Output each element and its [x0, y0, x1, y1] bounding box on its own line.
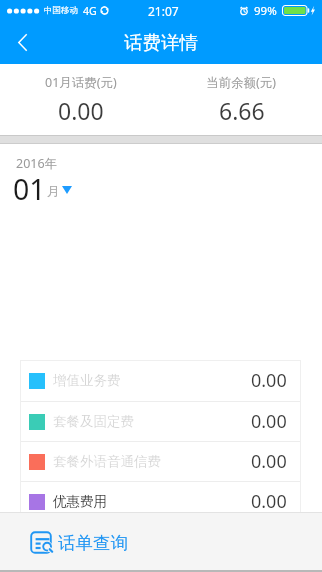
staticText: 6.66	[219, 95, 265, 126]
button[interactable]: 套餐外语音通信费	[20, 442, 301, 481]
staticText: 套餐及固定费	[53, 413, 134, 430]
staticText: 0.00	[58, 95, 104, 126]
staticText: 01	[13, 170, 46, 209]
staticText: 月	[47, 183, 60, 199]
staticText: 增值业务费	[53, 372, 121, 389]
staticText: 0.00	[251, 368, 287, 393]
staticText: 01月话费(元)	[45, 74, 117, 91]
staticText: 优惠费用	[53, 493, 107, 510]
button[interactable]: Back	[0, 21, 44, 64]
button[interactable]: 增值业务费	[20, 360, 301, 401]
staticText: 套餐外语音通信费	[53, 453, 161, 470]
staticText: 0.00	[251, 489, 287, 514]
staticText: 2016年	[16, 155, 58, 172]
button[interactable]: Select month	[58, 181, 76, 199]
staticText: 当前余额(元)	[206, 74, 277, 91]
staticText: 话费详情	[124, 31, 198, 54]
staticText: 中国移动	[44, 5, 78, 16]
staticText: 话单查询	[58, 532, 128, 554]
button[interactable]: 优惠费用	[20, 482, 301, 521]
staticText: 21:07	[148, 3, 179, 19]
staticText: 0.00	[251, 409, 287, 434]
button[interactable]: 话单查询	[30, 531, 128, 554]
staticText: 0.00	[251, 449, 287, 474]
staticText: 99%	[254, 3, 277, 19]
button[interactable]: 套餐及固定费	[20, 402, 301, 441]
staticText: 4G	[83, 4, 97, 18]
